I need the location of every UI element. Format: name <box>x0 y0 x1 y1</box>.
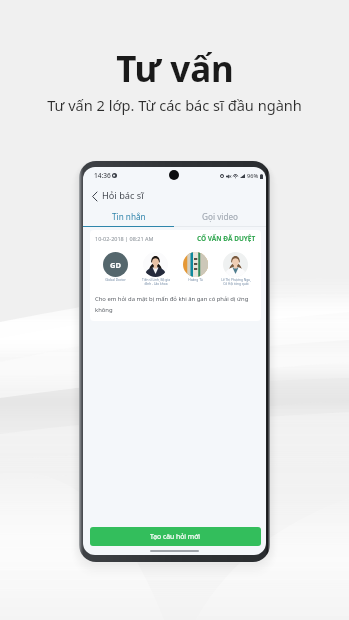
staticText: Global Doctor <box>105 278 126 282</box>
staticText: 10-02-2018 | 08:21 AM <box>95 235 154 242</box>
staticText: Tư vấn 2 lớp. Từ các bác sĩ đầu ngành <box>47 95 302 115</box>
button[interactable]: 10-02-2018 | 08:21 AM <box>90 230 261 321</box>
button[interactable]: Back <box>86 188 102 204</box>
staticText: Hoàng Tú <box>188 278 203 282</box>
staticText: Tin nhắn <box>112 211 146 222</box>
staticText: Tiến sĩ Linh, Bộ gia đình - Lão khoa <box>142 278 170 286</box>
staticText: Hỏi bác sĩ <box>102 189 144 202</box>
staticText: Gọi video <box>202 211 239 222</box>
staticText: Lê Thị Phương Nga, Cố Hội tổng quát <box>221 278 251 286</box>
staticText: GD <box>110 260 121 270</box>
button[interactable]: Tin nhắn <box>83 207 174 225</box>
staticText: Cho em hỏi da mặt bị mẩn đỏ khi ăn gan c… <box>95 295 257 314</box>
staticText: 96% <box>247 172 259 180</box>
staticText: CỐ VẤN ĐÃ DUYỆT <box>197 234 256 243</box>
button[interactable]: Tạo câu hỏi mới <box>90 527 261 546</box>
button[interactable]: Gọi video <box>174 207 266 225</box>
staticText: Tạo câu hỏi mới <box>150 532 201 541</box>
staticText: Tư vấn <box>116 45 234 93</box>
staticText: 14:36 <box>94 171 111 180</box>
